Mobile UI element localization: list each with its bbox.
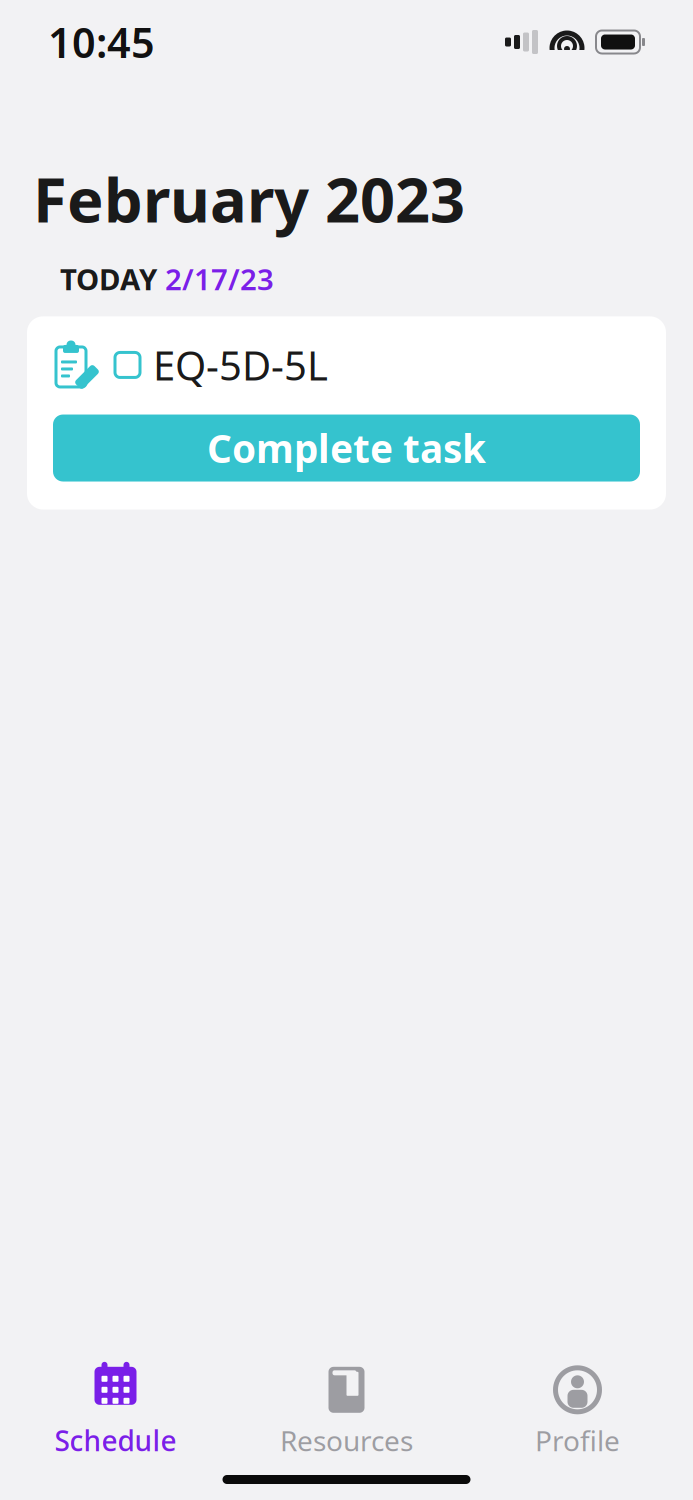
staticText: 2/17/23 bbox=[165, 259, 274, 298]
button[interactable]: Complete task bbox=[53, 414, 640, 481]
staticText: Complete task bbox=[207, 422, 486, 474]
staticText: February 2023 bbox=[33, 158, 465, 239]
button[interactable]: Profile bbox=[462, 1356, 693, 1469]
button[interactable]: Schedule bbox=[0, 1356, 231, 1469]
staticText: 10:45 bbox=[48, 15, 155, 69]
staticText: Profile bbox=[535, 1422, 620, 1459]
staticText: EQ-5D-5L bbox=[153, 338, 328, 391]
staticText: Resources bbox=[280, 1422, 413, 1459]
staticText: Schedule bbox=[54, 1422, 176, 1459]
button[interactable]: Resources bbox=[231, 1356, 462, 1469]
staticText: TODAY bbox=[60, 259, 157, 298]
